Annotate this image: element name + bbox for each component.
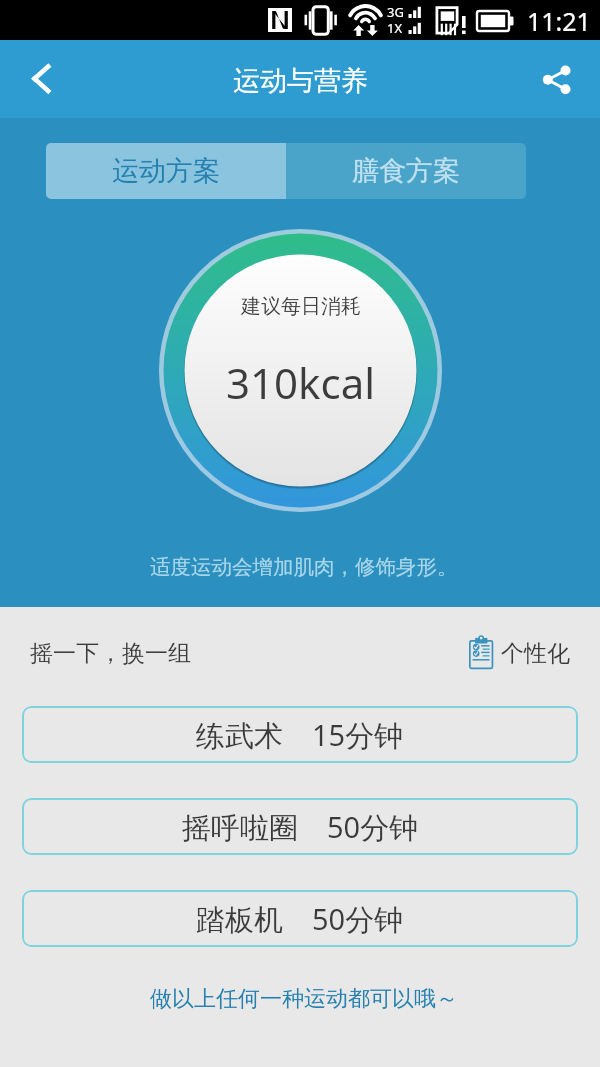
staticText: 运动方案: [112, 154, 220, 188]
staticText: 摇呼啦圈 50分钟: [182, 807, 419, 847]
button[interactable]: 练武术 15分钟: [22, 706, 578, 763]
staticText: 摇一下，换一组: [30, 639, 191, 668]
staticText: 11:21: [527, 4, 591, 38]
button[interactable]: 运动方案: [46, 143, 286, 199]
staticText: 适度运动会增加肌肉，修饰身形。: [150, 554, 458, 580]
staticText: 个性化: [501, 639, 570, 668]
button[interactable]: 踏板机 50分钟: [22, 890, 578, 947]
staticText: 膳食方案: [352, 154, 460, 188]
staticText: 练武术 15分钟: [196, 715, 404, 755]
staticText: 运动与营养: [233, 64, 368, 98]
button[interactable]: 膳食方案: [286, 143, 526, 199]
button[interactable]: 个性化: [466, 637, 570, 670]
button[interactable]: 做以上任何一种运动都可以哦～: [146, 985, 454, 1013]
staticText: 3G: [387, 3, 404, 21]
button[interactable]: 摇呼啦圈 50分钟: [22, 798, 578, 855]
staticText: 建议每日消耗: [241, 294, 361, 319]
button[interactable]: Back: [0, 40, 70, 118]
staticText: 1X: [387, 19, 403, 37]
button[interactable]: Share: [530, 40, 600, 118]
staticText: 310kcal: [226, 354, 376, 411]
staticText: 踏板机 50分钟: [196, 899, 404, 939]
